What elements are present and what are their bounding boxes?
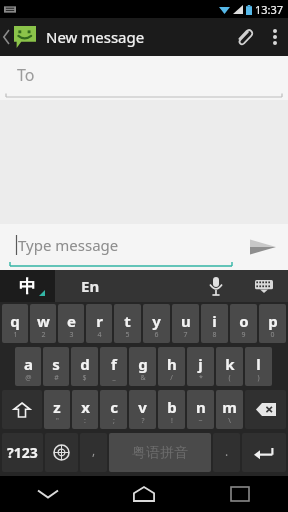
button[interactable]: e [58, 304, 84, 343]
staticText: @ [25, 373, 32, 383]
staticText: 3 [69, 330, 74, 340]
button[interactable]: n [187, 390, 214, 429]
button[interactable]: g [129, 347, 156, 386]
staticText: y [152, 311, 161, 331]
button[interactable]: More options [262, 18, 288, 56]
button[interactable]: Space [109, 433, 211, 472]
button[interactable]: f [100, 347, 127, 386]
staticText: . [225, 443, 229, 459]
button[interactable]: Recent apps [192, 476, 288, 512]
button[interactable]: ?123 [2, 433, 43, 472]
button[interactable]: Type message [0, 224, 238, 270]
button[interactable]: To [0, 56, 288, 100]
button[interactable]: k [216, 347, 243, 386]
staticText: 2 [41, 330, 46, 340]
button[interactable]: p [259, 304, 286, 343]
staticText: 5 [125, 330, 130, 340]
staticText: ~ [198, 416, 203, 426]
staticText: ? [141, 416, 145, 426]
staticText: ( [228, 373, 231, 383]
staticText: g [138, 354, 148, 374]
staticText: , [92, 442, 96, 458]
staticText: f [111, 354, 117, 374]
staticText: 0 [270, 330, 275, 340]
staticText: h [167, 354, 177, 374]
staticText: 6 [154, 330, 159, 340]
button[interactable]: h [158, 347, 185, 386]
button[interactable]: d [71, 347, 98, 386]
staticText: p [268, 311, 278, 331]
staticText: c [110, 397, 118, 417]
button[interactable]: Send [238, 224, 288, 270]
button[interactable]: b [158, 390, 185, 429]
staticText: & [140, 373, 146, 383]
button[interactable]: z [44, 390, 70, 429]
button[interactable]: Attach [226, 18, 262, 56]
button[interactable]: i [201, 304, 228, 343]
staticText: k [225, 354, 235, 374]
button[interactable]: j [187, 347, 214, 386]
staticText: * [199, 373, 203, 383]
staticText: / [170, 373, 173, 383]
staticText: ! [171, 416, 173, 426]
staticText: l [256, 354, 261, 374]
button[interactable]: Voice input [192, 270, 240, 302]
button[interactable]: Backspace [245, 390, 286, 429]
button[interactable]: m [216, 390, 243, 429]
button[interactable]: r [86, 304, 112, 343]
staticText: q [10, 311, 20, 331]
staticText: 7 [183, 330, 188, 340]
button[interactable]: Shift [2, 390, 42, 429]
button[interactable]: q [2, 304, 28, 343]
button[interactable]: Change language [45, 433, 78, 472]
button[interactable]: v [129, 390, 156, 429]
staticText: To [17, 64, 35, 86]
button[interactable]: Keyboard settings [240, 270, 288, 302]
staticText: : [84, 416, 86, 426]
button[interactable]: c [100, 390, 127, 429]
staticText: n [196, 397, 206, 417]
staticText: # [54, 373, 59, 383]
button[interactable]: x [72, 390, 98, 429]
staticText: e [67, 311, 76, 331]
staticText: u [181, 311, 191, 331]
button[interactable]: o [230, 304, 257, 343]
staticText: o [239, 311, 249, 331]
staticText: x [81, 397, 90, 417]
staticText: w [37, 311, 50, 331]
button[interactable]: Navigate up [0, 18, 40, 56]
button[interactable]: 中 [0, 270, 55, 302]
button[interactable]: l [245, 347, 272, 386]
button[interactable]: w [30, 304, 56, 343]
staticText: Type message [18, 235, 119, 255]
button[interactable]: Home [96, 476, 192, 512]
button[interactable]: u [172, 304, 199, 343]
button[interactable]: a [15, 347, 41, 386]
staticText: ?123 [7, 443, 38, 462]
button[interactable]: Hide keyboard [0, 476, 96, 512]
staticText: z [53, 397, 61, 417]
button[interactable]: Comma [80, 433, 107, 472]
button[interactable]: t [114, 304, 141, 343]
staticText: r [96, 311, 103, 331]
staticText: \ [228, 416, 231, 426]
staticText: a [24, 354, 33, 374]
button[interactable]: Period [213, 433, 240, 472]
staticText: ; [113, 416, 115, 426]
staticText: i [212, 311, 217, 331]
button[interactable]: En [55, 270, 192, 302]
staticText: j [198, 354, 203, 374]
staticText: New message [46, 27, 145, 47]
staticText: 中 [19, 276, 36, 297]
staticText: 4 [97, 330, 102, 340]
button[interactable]: y [143, 304, 170, 343]
staticText: 13:37 [255, 2, 284, 17]
staticText: ) [257, 373, 260, 383]
staticText: 8 [212, 330, 217, 340]
button[interactable]: s [43, 347, 69, 386]
staticText: v [138, 397, 147, 417]
staticText: b [167, 397, 177, 417]
staticText: $ [82, 373, 87, 383]
staticText: s [52, 354, 60, 374]
button[interactable]: Enter [242, 433, 286, 472]
